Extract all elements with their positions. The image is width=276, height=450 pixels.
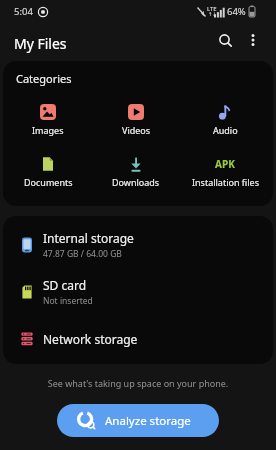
staticText: Internal storage	[43, 230, 134, 246]
staticText: Not inserted	[43, 295, 93, 307]
staticText: My Files	[14, 34, 67, 53]
staticText: 64%	[227, 5, 246, 18]
staticText: Images	[32, 124, 64, 136]
staticText: Downloads	[112, 176, 160, 188]
button[interactable]: Documents	[4, 154, 92, 188]
staticText: ↑↓	[208, 11, 217, 17]
staticText: Network storage	[43, 331, 138, 347]
staticText: Videos	[122, 124, 151, 136]
staticText: LTE	[207, 5, 217, 13]
button[interactable]: Internal storage	[3, 221, 273, 268]
staticText: Installation files	[192, 176, 259, 188]
button[interactable]	[242, 30, 264, 52]
button[interactable]: Images	[4, 102, 92, 136]
button[interactable]: Videos	[92, 102, 180, 136]
staticText: 5:04	[14, 5, 33, 18]
staticText: Categories	[16, 71, 72, 86]
button[interactable]: Audio	[181, 102, 269, 136]
staticText: Analyze storage	[105, 413, 191, 429]
staticText: 47.87 GB / 64.00 GB	[43, 248, 122, 260]
staticText: Documents	[24, 176, 73, 188]
staticText: See what's taking up space on your phone…	[0, 377, 276, 389]
button[interactable]: APK	[181, 154, 269, 188]
button[interactable]: Downloads	[92, 154, 180, 188]
staticText: Audio	[213, 124, 238, 136]
staticText: SD card	[43, 277, 87, 293]
button[interactable]: SD card	[3, 268, 273, 315]
button[interactable]: Network storage	[3, 315, 273, 362]
staticText: APK	[215, 157, 235, 171]
button[interactable]	[215, 30, 237, 52]
button[interactable]: Analyze storage	[57, 404, 219, 437]
